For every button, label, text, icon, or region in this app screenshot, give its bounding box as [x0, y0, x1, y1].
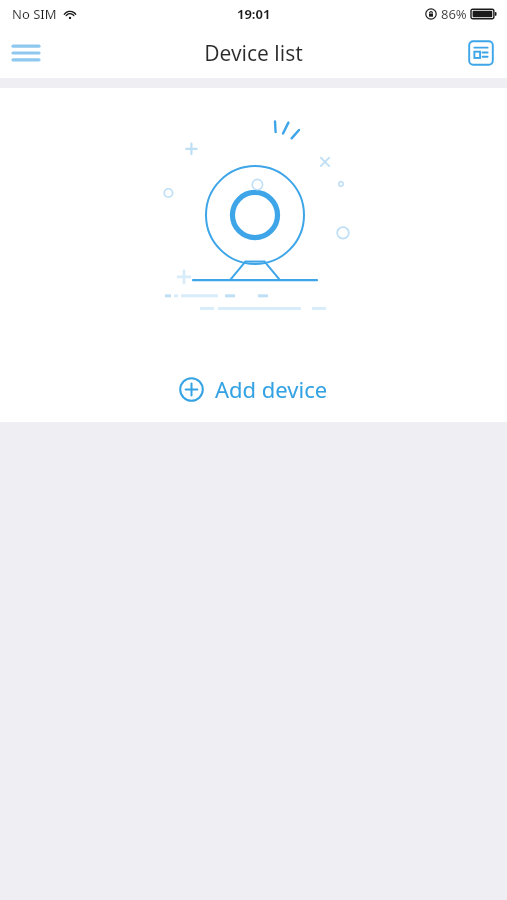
staticText: 19:01 — [237, 5, 271, 23]
staticText: Device list — [204, 39, 303, 68]
staticText: Add device — [215, 374, 328, 404]
button[interactable]: Menu — [0, 28, 52, 78]
staticText: 86% — [441, 5, 467, 23]
staticText: No SIM — [12, 5, 57, 23]
button[interactable]: Add device — [161, 366, 346, 412]
button[interactable]: Switch view — [455, 28, 507, 78]
